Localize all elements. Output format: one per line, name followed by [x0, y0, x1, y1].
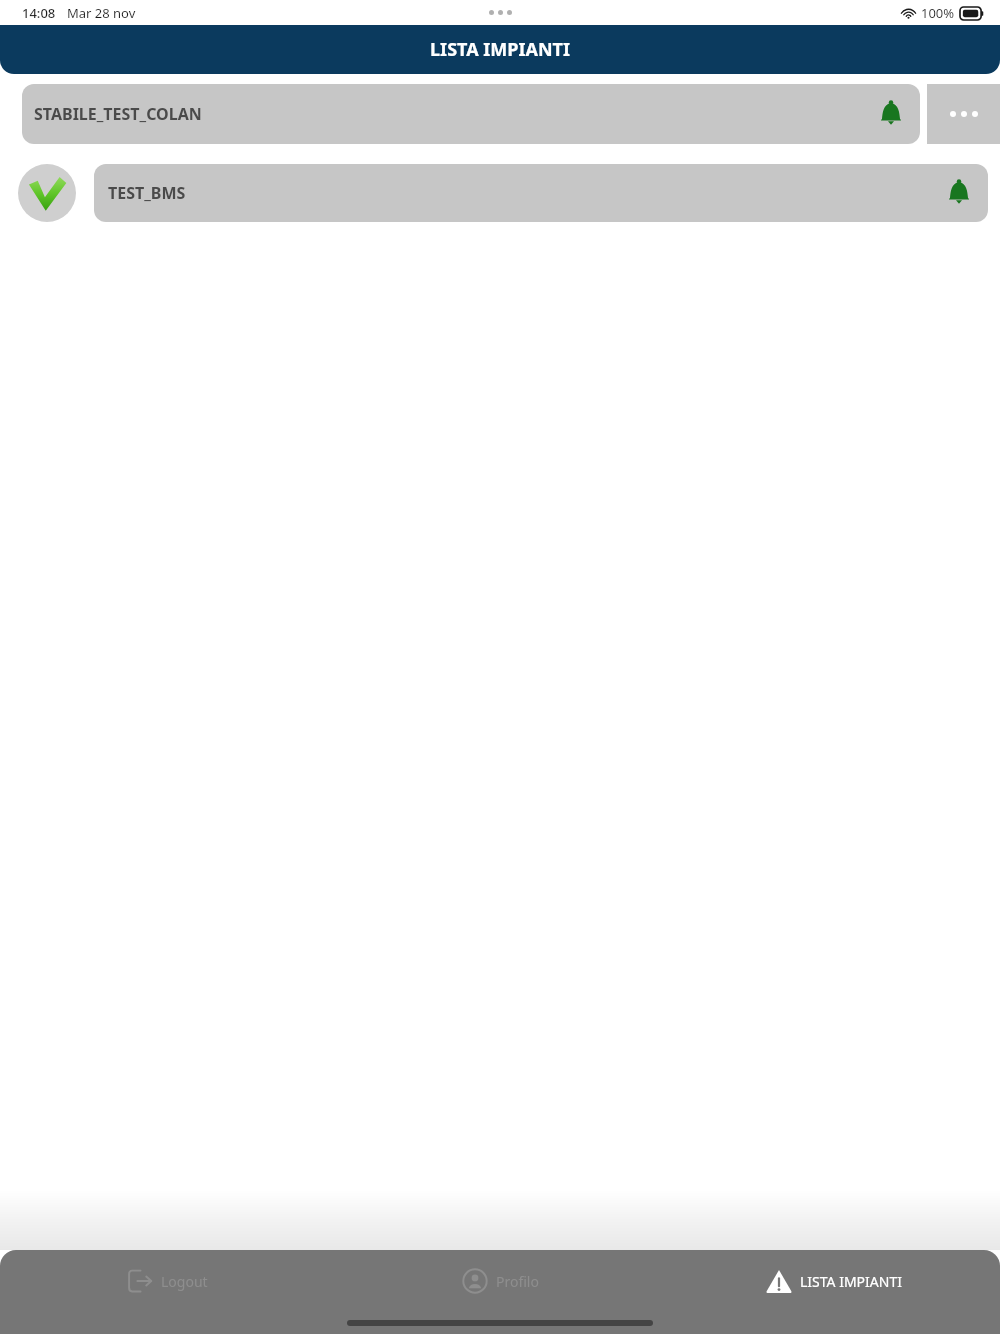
- staticText: LISTA IMPIANTI: [430, 37, 570, 62]
- staticText: LISTA IMPIANTI: [800, 1272, 902, 1291]
- button[interactable]: LISTA IMPIANTI: [667, 1250, 1000, 1312]
- staticText: TEST_BMS: [108, 182, 186, 204]
- button[interactable]: STABILE_TEST_COLAN: [22, 84, 920, 144]
- button[interactable]: More options: [927, 84, 1000, 144]
- staticText: 100%: [921, 4, 955, 22]
- staticText: Profilo: [496, 1272, 539, 1291]
- button[interactable]: Logout: [0, 1250, 334, 1312]
- staticText: STABILE_TEST_COLAN: [34, 103, 202, 125]
- button[interactable]: Status OK: [18, 164, 76, 222]
- staticText: Logout: [161, 1272, 208, 1291]
- staticText: Mar 28 nov: [67, 4, 136, 22]
- staticText: 14:08: [22, 4, 56, 22]
- button[interactable]: TEST_BMS: [94, 164, 988, 222]
